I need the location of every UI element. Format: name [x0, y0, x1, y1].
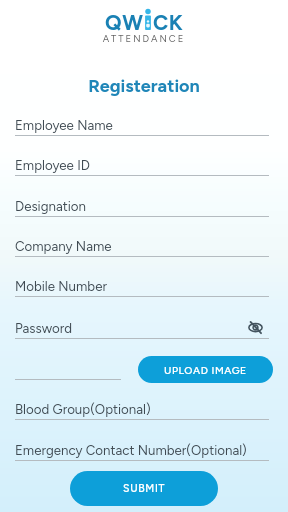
- staticText: SUBMIT: [123, 482, 166, 495]
- button[interactable]: [0, 271, 288, 297]
- staticText: Mobile Number: [15, 278, 107, 294]
- button[interactable]: [0, 110, 288, 136]
- button[interactable]: [0, 394, 288, 420]
- staticText: Password: [15, 320, 73, 336]
- button[interactable]: SUBMIT: [70, 471, 218, 506]
- button[interactable]: [0, 313, 288, 339]
- button[interactable]: [0, 150, 288, 176]
- staticText: CK: [153, 10, 184, 35]
- button[interactable]: [0, 435, 288, 461]
- staticText: Emergency Contact Number(Optional): [15, 442, 247, 458]
- staticText: ATTENDANCE: [0, 33, 288, 44]
- button[interactable]: Toggle password visibility: [245, 317, 266, 338]
- staticText: Designation: [15, 198, 86, 214]
- staticText: Employee ID: [15, 157, 90, 173]
- button[interactable]: [0, 191, 288, 217]
- button[interactable]: UPLOAD IMAGE: [138, 356, 273, 383]
- staticText: QW: [105, 10, 144, 35]
- staticText: UPLOAD IMAGE: [164, 364, 247, 376]
- button[interactable]: [0, 231, 288, 257]
- staticText: Company Name: [15, 238, 112, 254]
- staticText: Blood Group(Optional): [15, 401, 151, 417]
- staticText: Employee Name: [15, 117, 113, 133]
- staticText: Registeration: [0, 75, 288, 97]
